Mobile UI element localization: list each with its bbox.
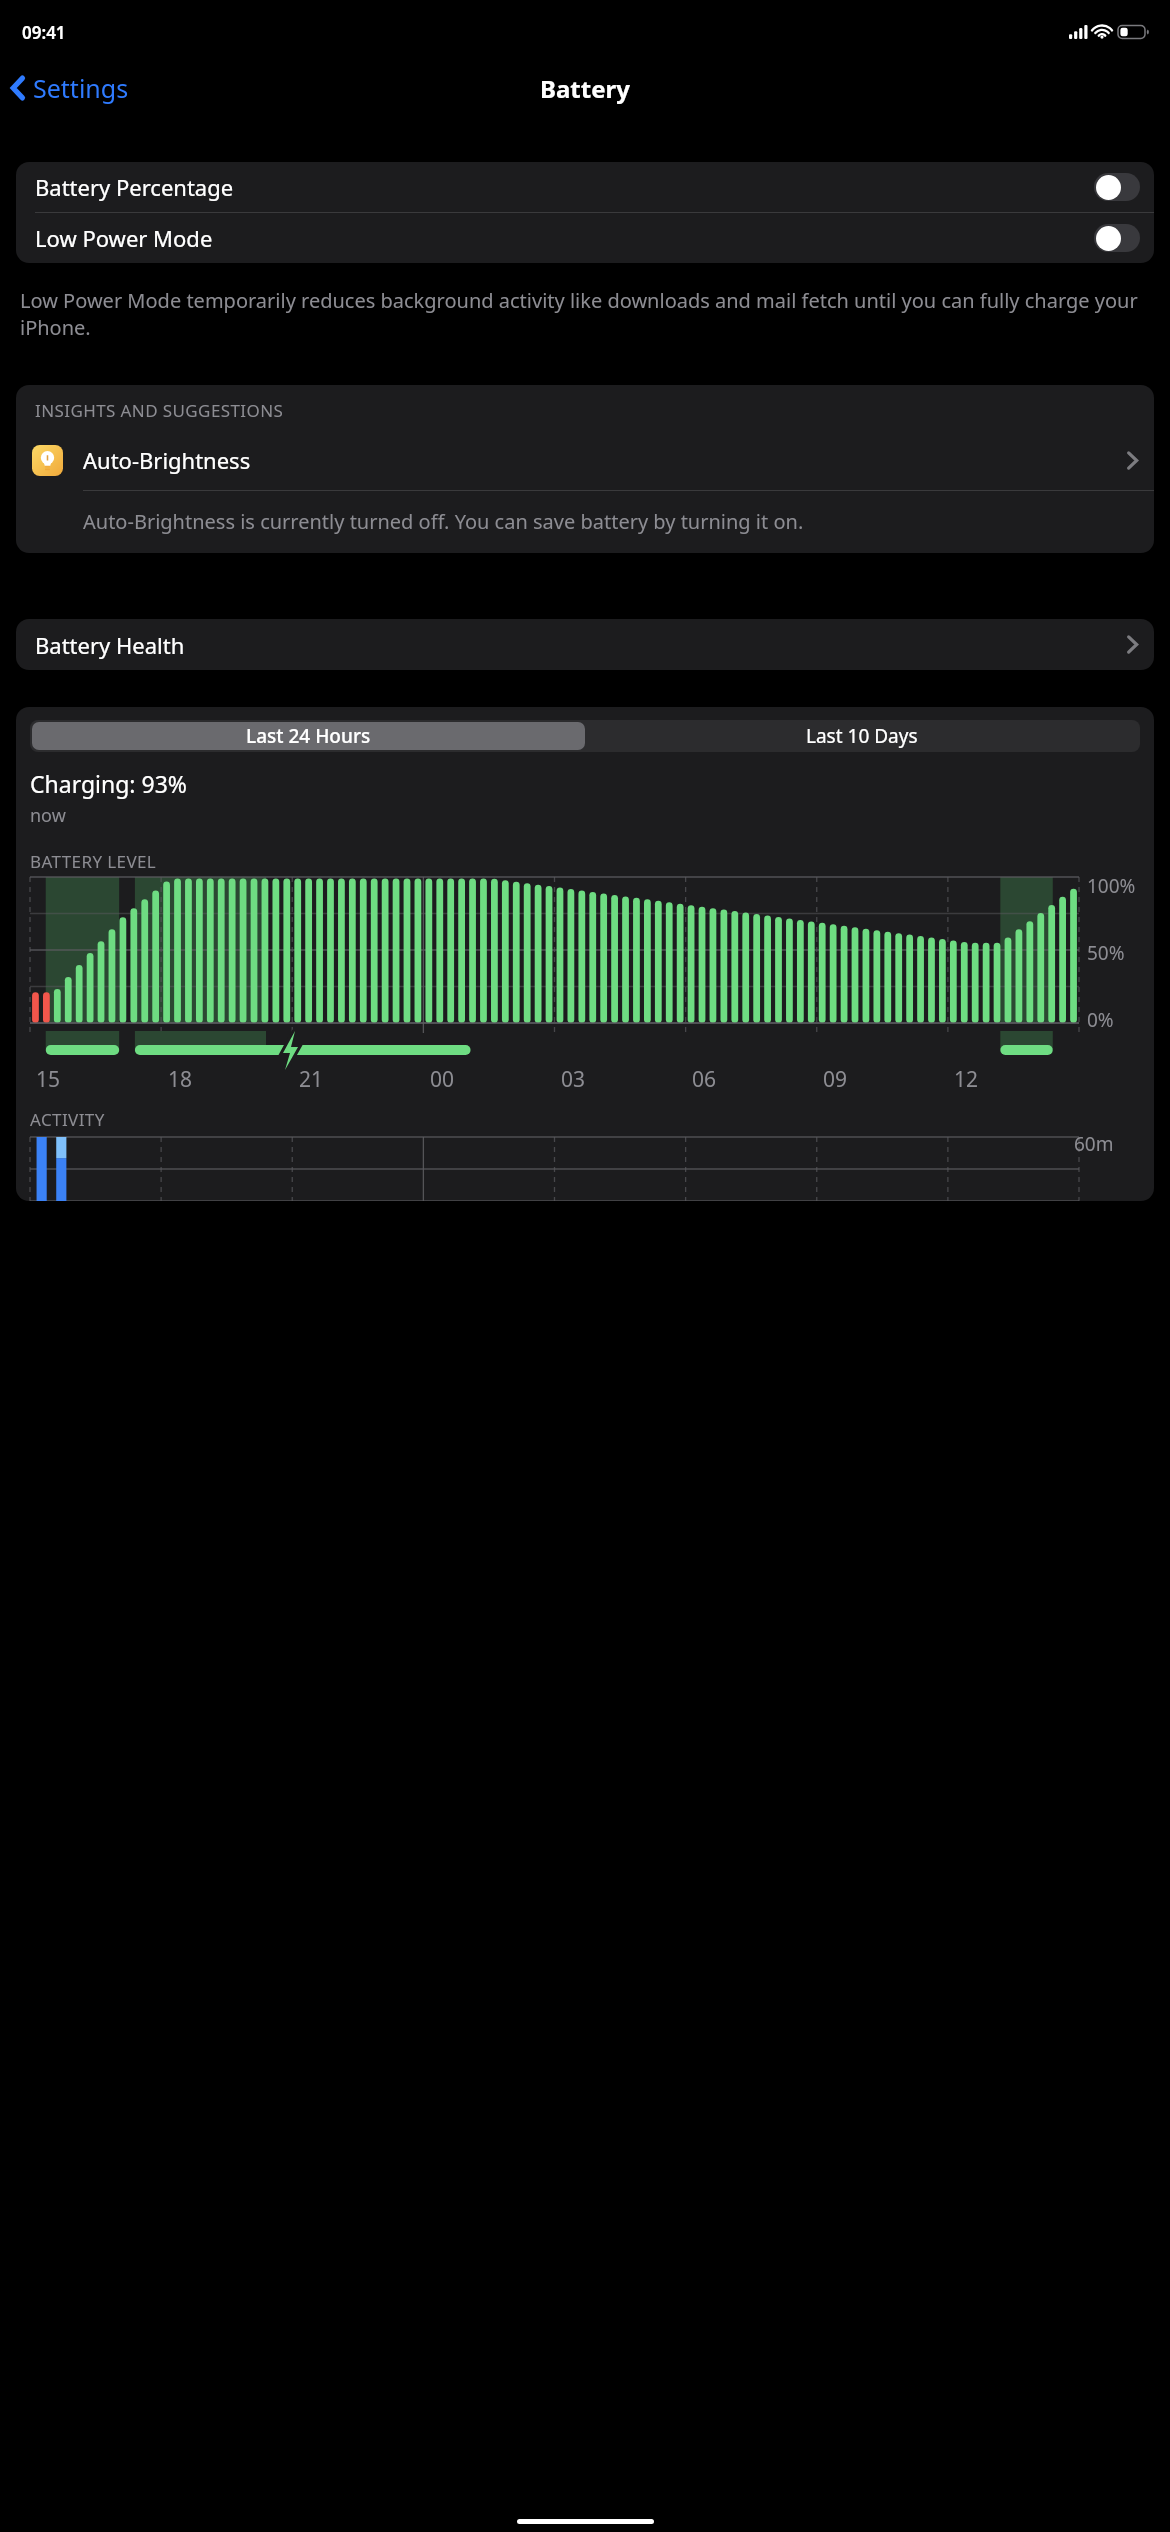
staticText: 50% xyxy=(1087,940,1125,966)
staticText: Low Power Mode xyxy=(35,223,213,253)
staticText: Last 24 Hours xyxy=(246,723,371,749)
staticText: Battery xyxy=(540,72,630,105)
staticText: 00 xyxy=(430,1065,455,1094)
button[interactable]: Battery Percentage xyxy=(16,162,1154,212)
staticText: 09 xyxy=(823,1065,848,1094)
staticText: 100% xyxy=(1087,873,1136,899)
button[interactable]: Settings xyxy=(0,65,141,111)
staticText: Charging: 93% xyxy=(30,768,187,799)
staticText: 0% xyxy=(1087,1007,1114,1033)
staticText: 03 xyxy=(561,1065,586,1094)
staticText: Auto-Brightness xyxy=(83,445,251,475)
staticText: now xyxy=(30,803,66,828)
staticText: Auto-Brightness is currently turned off.… xyxy=(83,508,804,535)
staticText: Low Power Mode temporarily reduces backg… xyxy=(20,287,1150,341)
staticText: Settings xyxy=(33,71,129,105)
staticText: BATTERY LEVEL xyxy=(30,850,157,873)
staticText: 21 xyxy=(299,1065,324,1094)
staticText: 12 xyxy=(954,1065,979,1094)
button[interactable]: Auto-Brightness xyxy=(16,430,1154,490)
staticText: INSIGHTS AND SUGGESTIONS xyxy=(35,399,284,422)
staticText: ACTIVITY xyxy=(30,1108,105,1131)
button[interactable]: Low Power Mode xyxy=(16,213,1154,263)
button[interactable]: Last 10 Days xyxy=(585,722,1138,750)
staticText: 18 xyxy=(168,1065,193,1094)
staticText: 06 xyxy=(692,1065,717,1094)
staticText: Battery Health xyxy=(35,630,185,660)
staticText: 60m xyxy=(1074,1131,1114,1157)
staticText: 09:41 xyxy=(22,21,66,44)
button[interactable]: Battery Health xyxy=(16,619,1154,670)
staticText: 15 xyxy=(36,1065,61,1094)
button[interactable]: Last 24 Hours xyxy=(32,722,585,750)
staticText: Last 10 Days xyxy=(806,723,918,749)
staticText: Battery Percentage xyxy=(35,172,234,202)
